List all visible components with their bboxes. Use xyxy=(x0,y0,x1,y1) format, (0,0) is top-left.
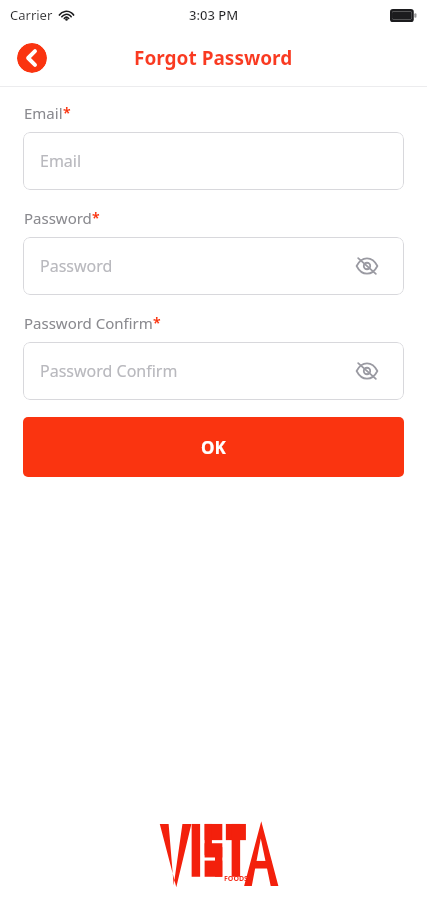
staticText: Carrier xyxy=(10,6,53,24)
button[interactable]: Toggle password visibility xyxy=(352,356,382,386)
button[interactable]: Back xyxy=(17,43,47,73)
staticText: Email xyxy=(24,103,63,123)
staticText: 3:03 PM xyxy=(189,6,239,24)
staticText: Password xyxy=(24,208,92,228)
button[interactable]: OK xyxy=(23,417,404,477)
staticText: * xyxy=(92,208,100,227)
button[interactable]: Email xyxy=(23,132,404,190)
button[interactable]: Toggle password visibility xyxy=(352,251,382,281)
staticText: Forgot Password xyxy=(134,45,293,71)
staticText: Password xyxy=(40,255,113,277)
staticText: * xyxy=(63,103,71,122)
staticText: Password Confirm xyxy=(24,313,153,333)
staticText: FOODS xyxy=(224,874,248,884)
staticText: Email xyxy=(40,150,82,172)
staticText: Password Confirm xyxy=(40,360,178,382)
staticText: OK xyxy=(201,436,226,459)
button[interactable]: Password xyxy=(23,237,404,295)
staticText: * xyxy=(153,313,161,332)
button[interactable]: Password Confirm xyxy=(23,342,404,400)
